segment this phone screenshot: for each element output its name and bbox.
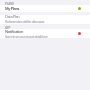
button[interactable]: Data Plan [0, 15, 90, 24]
staticText: Notification [5, 29, 24, 34]
button[interactable]: My Plans [0, 5, 90, 12]
staticText: Data Plan [5, 14, 20, 19]
staticText: APP [5, 26, 11, 30]
button[interactable]: Notification [0, 29, 90, 38]
staticText: Recharge plans valid for data usage [5, 20, 45, 23]
staticText: PLANS [5, 2, 14, 6]
staticText: Sign in to see your account details here [5, 35, 48, 38]
staticText: My Plans [5, 6, 20, 11]
